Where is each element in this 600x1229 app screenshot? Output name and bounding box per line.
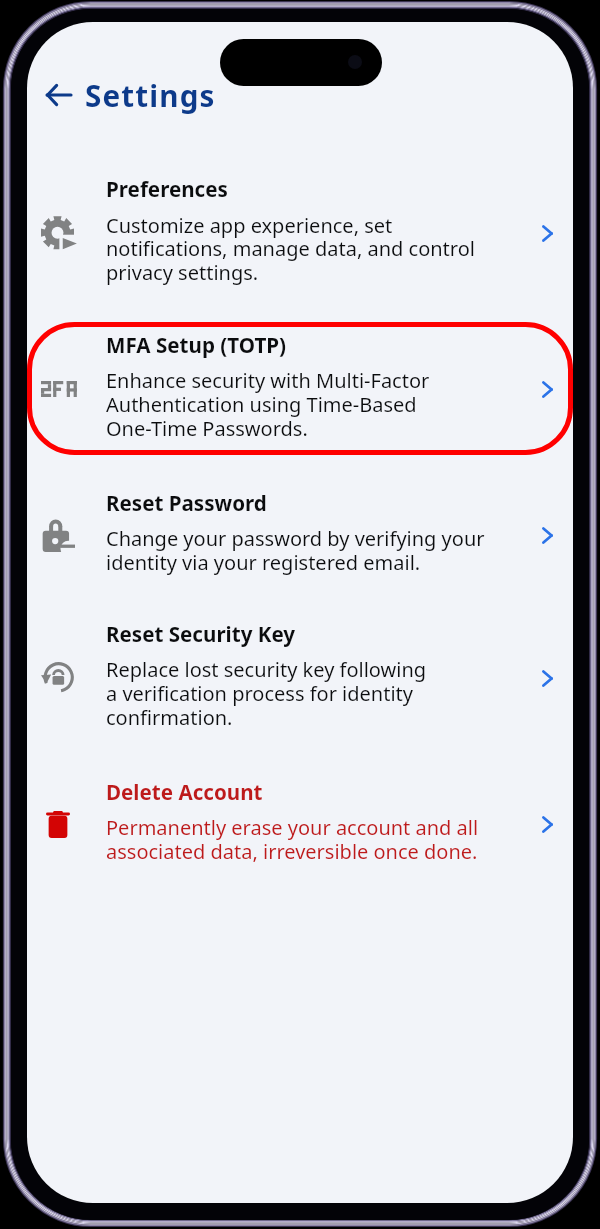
- button[interactable]: [27, 611, 573, 744]
- staticText: a verification process for identity: [106, 680, 414, 707]
- button[interactable]: Back: [36, 72, 82, 118]
- staticText: identity via your registered email.: [106, 549, 421, 576]
- button[interactable]: Open MFA Setup (TOTP): [525, 367, 569, 411]
- button[interactable]: Open Reset Security Key: [525, 656, 569, 700]
- staticText: privacy settings.: [106, 259, 259, 286]
- staticText: Preferences: [106, 175, 228, 203]
- button[interactable]: Open Delete Account: [525, 802, 569, 846]
- staticText: Reset Security Key: [106, 620, 296, 648]
- staticText: MFA Setup (TOTP): [106, 331, 287, 359]
- staticText: associated data, irreversible once done.: [106, 838, 478, 865]
- staticText: Permanently erase your account and all: [106, 814, 479, 841]
- staticText: confirmation.: [106, 704, 233, 731]
- button[interactable]: Open Preferences: [525, 211, 569, 255]
- staticText: Reset Password: [106, 489, 267, 517]
- staticText: notifications, manage data, and control: [106, 235, 475, 262]
- staticText: Customize app experience, set: [106, 212, 393, 239]
- staticText: One-Time Passwords.: [106, 415, 308, 442]
- staticText: Enhance security with Multi-Factor: [106, 367, 430, 394]
- staticText: Delete Account: [106, 778, 263, 806]
- staticText: Replace lost security key following: [106, 656, 427, 683]
- button[interactable]: Settings: [85, 75, 216, 115]
- button[interactable]: Open Reset Password: [525, 513, 569, 557]
- button[interactable]: [27, 480, 573, 589]
- button[interactable]: [27, 166, 573, 299]
- staticText: Settings: [85, 75, 216, 115]
- staticText: Change your password by verifying your: [106, 525, 485, 552]
- staticText: Authentication using Time-Based: [106, 391, 417, 418]
- button[interactable]: [27, 322, 573, 455]
- button[interactable]: [27, 769, 573, 878]
